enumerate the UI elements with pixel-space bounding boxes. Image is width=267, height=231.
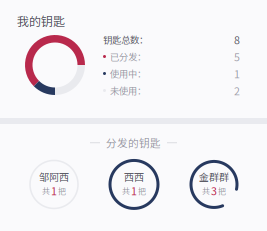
staticText: 8: [234, 32, 240, 47]
staticText: 共: [202, 185, 210, 196]
staticText: 把: [138, 185, 146, 196]
staticText: 西西: [124, 169, 144, 184]
staticText: 2: [234, 83, 240, 98]
staticText: 已分发：: [110, 50, 146, 63]
staticText: 1: [51, 183, 57, 198]
staticText: 把: [218, 185, 226, 196]
staticText: 把: [58, 185, 66, 196]
staticText: 我的钥匙: [17, 12, 65, 29]
staticText: 共: [42, 185, 50, 196]
staticText: 5: [234, 49, 240, 64]
staticText: 3: [211, 183, 217, 198]
staticText: 钥匙总数：: [103, 33, 148, 46]
staticText: 未使用：: [110, 84, 146, 97]
button[interactable]: 金群群: [186, 156, 242, 212]
staticText: 金群群: [199, 169, 229, 184]
staticText: 共: [122, 185, 130, 196]
button[interactable]: 邹阿西: [26, 156, 82, 212]
staticText: 1: [131, 183, 137, 198]
staticText: 邹阿西: [39, 169, 69, 184]
button[interactable]: 西西: [106, 156, 162, 212]
staticText: 分发的钥匙: [106, 135, 161, 150]
staticText: 使用中：: [110, 67, 146, 80]
staticText: 1: [234, 66, 240, 81]
